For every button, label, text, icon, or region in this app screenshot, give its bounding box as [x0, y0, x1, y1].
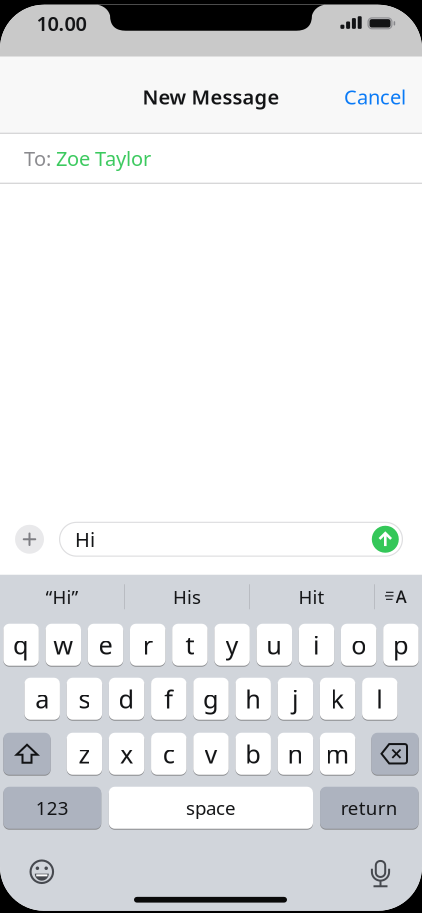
- staticText: p: [393, 628, 409, 661]
- staticText: His: [173, 584, 201, 609]
- staticText: u: [266, 628, 282, 661]
- button[interactable]: n: [278, 732, 313, 776]
- button[interactable]: e: [88, 623, 123, 667]
- button[interactable]: 123: [3, 786, 101, 830]
- button[interactable]: y: [214, 623, 250, 667]
- staticText: q: [13, 628, 29, 661]
- staticText: s: [78, 682, 90, 715]
- button[interactable]: m: [320, 732, 355, 776]
- button[interactable]: s: [67, 677, 102, 721]
- button[interactable]: [365, 857, 396, 889]
- button[interactable]: His: [127, 576, 247, 618]
- staticText: v: [204, 737, 217, 770]
- button[interactable]: [0, 4, 422, 911]
- staticText: y: [226, 628, 239, 661]
- staticText: 10.00: [36, 10, 86, 37]
- staticText: g: [203, 682, 219, 715]
- button[interactable]: d: [109, 677, 144, 721]
- staticText: m: [326, 737, 350, 770]
- staticText: j: [292, 682, 299, 715]
- staticText: 123: [36, 795, 69, 820]
- staticText: f: [164, 682, 173, 715]
- button[interactable]: r: [130, 623, 165, 667]
- button[interactable]: b: [235, 732, 271, 776]
- staticText: r: [143, 628, 153, 661]
- staticText: return: [341, 795, 398, 820]
- staticText: Zoe Taylor: [56, 145, 151, 172]
- staticText: e: [98, 628, 112, 661]
- button[interactable]: o: [341, 623, 376, 667]
- staticText: l: [376, 682, 383, 715]
- staticText: z: [78, 737, 90, 770]
- staticText: space: [186, 795, 236, 820]
- button[interactable]: p: [383, 623, 419, 667]
- button[interactable]: h: [235, 677, 271, 721]
- button[interactable]: Cancel: [344, 83, 406, 110]
- staticText: n: [287, 737, 303, 770]
- button[interactable]: [0, 4, 422, 911]
- button[interactable]: space: [109, 786, 313, 830]
- staticText: d: [119, 682, 135, 715]
- button[interactable]: Hit: [251, 576, 371, 618]
- button[interactable]: z: [67, 732, 102, 776]
- button[interactable]: j: [278, 677, 313, 721]
- staticText: A: [395, 585, 406, 608]
- button[interactable]: [372, 526, 399, 553]
- staticText: Cancel: [344, 83, 406, 110]
- staticText: w: [53, 628, 73, 661]
- staticText: c: [163, 737, 175, 770]
- staticText: o: [351, 628, 366, 661]
- button[interactable]: [29, 859, 54, 884]
- staticText: k: [331, 682, 345, 715]
- button[interactable]: x: [109, 732, 144, 776]
- staticText: a: [35, 682, 49, 715]
- button[interactable]: i: [299, 623, 334, 667]
- button[interactable]: Hi: [59, 522, 403, 557]
- staticText: Hit: [298, 584, 324, 609]
- staticText: To:: [24, 145, 56, 172]
- button[interactable]: return: [320, 786, 419, 830]
- button[interactable]: a: [24, 677, 60, 721]
- button[interactable]: [15, 525, 44, 554]
- button[interactable]: w: [46, 623, 81, 667]
- staticText: “Hi”: [45, 584, 78, 609]
- staticText: New Message: [142, 83, 279, 110]
- button[interactable]: f: [151, 677, 187, 721]
- button[interactable]: g: [193, 677, 229, 721]
- button[interactable]: t: [172, 623, 208, 667]
- button[interactable]: A: [383, 589, 407, 605]
- staticText: h: [245, 682, 261, 715]
- staticText: i: [313, 628, 320, 661]
- button[interactable]: l: [362, 677, 398, 721]
- button[interactable]: c: [151, 732, 187, 776]
- button[interactable]: q: [3, 623, 39, 667]
- staticText: Hi: [75, 526, 95, 553]
- button[interactable]: To:: [0, 134, 422, 183]
- button[interactable]: u: [257, 623, 292, 667]
- staticText: x: [120, 737, 133, 770]
- staticText: b: [245, 737, 261, 770]
- button[interactable]: k: [320, 677, 355, 721]
- button[interactable]: v: [193, 732, 229, 776]
- button[interactable]: “Hi”: [2, 576, 122, 618]
- staticText: t: [185, 628, 194, 661]
